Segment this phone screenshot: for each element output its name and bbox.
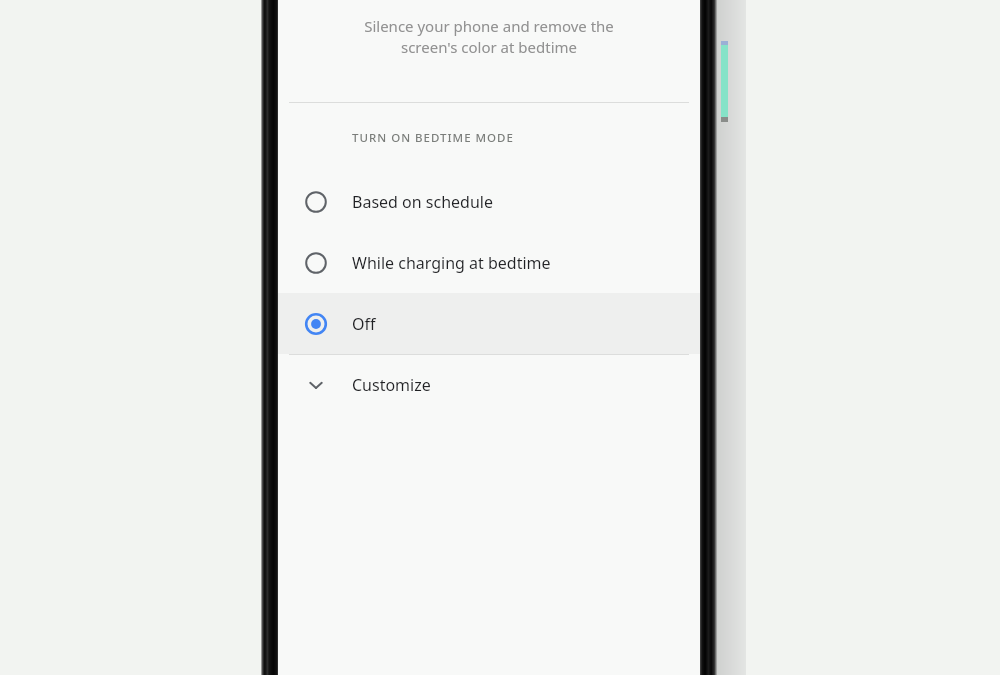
- other: Based on schedule: [302, 188, 330, 216]
- staticText: Off: [352, 313, 376, 335]
- staticText: TURN ON BEDTIME MODE: [352, 130, 514, 146]
- button[interactable]: While charging at bedtime: [278, 232, 700, 293]
- button[interactable]: Based on schedule: [278, 171, 700, 232]
- staticText: Silence your phone and remove the screen…: [326, 16, 652, 58]
- other: Off: [302, 310, 330, 338]
- staticText: While charging at bedtime: [352, 252, 551, 274]
- other: While charging at bedtime: [302, 249, 330, 277]
- button[interactable]: Customize: [278, 355, 700, 415]
- staticText: Based on schedule: [352, 191, 493, 213]
- button[interactable]: Off: [278, 293, 700, 354]
- staticText: Customize: [352, 374, 431, 396]
